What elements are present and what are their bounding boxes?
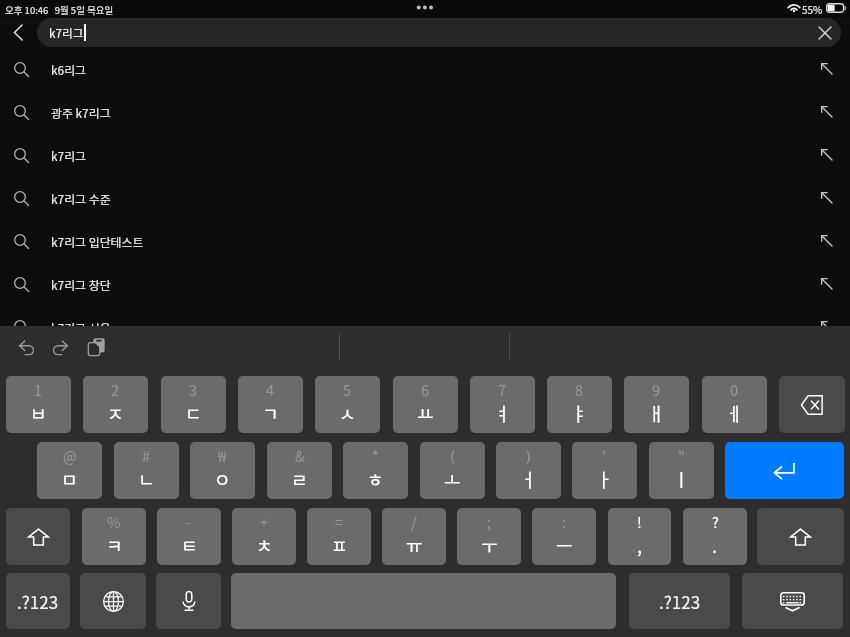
staticText: .	[712, 532, 718, 558]
button[interactable]: Insert "광주 k7리그" into search box	[816, 101, 837, 122]
button[interactable]: .?123	[629, 573, 730, 629]
button[interactable]: Insert "k6리그" into search box	[816, 58, 837, 79]
staticText: ㅅ	[339, 400, 356, 426]
staticText: ㅐ	[648, 400, 665, 426]
button[interactable]: '	[572, 442, 637, 499]
button[interactable]: 4	[238, 376, 303, 433]
button[interactable]: !	[608, 508, 671, 565]
button[interactable]: Insert "k7리그 수준" into search box	[816, 187, 837, 208]
staticText: ㄱ	[262, 400, 279, 426]
staticText: ㅣ	[673, 466, 690, 492]
button[interactable]: k7리그	[37, 18, 841, 47]
staticText: 오후 10:46 9월 5일 목요일	[5, 3, 114, 17]
staticText: ㅔ	[726, 400, 743, 426]
button[interactable]: 2	[83, 376, 148, 433]
button[interactable]: Back	[8, 19, 37, 46]
button[interactable]: "	[649, 442, 714, 499]
button[interactable]: @	[37, 442, 102, 499]
button[interactable]: *	[343, 442, 408, 499]
staticText: 7	[498, 379, 507, 400]
button[interactable]: 광주 k7리그	[0, 91, 850, 134]
button[interactable]: 3	[161, 376, 226, 433]
staticText: 55%	[802, 2, 823, 16]
button[interactable]: )	[496, 442, 561, 499]
button[interactable]: 8	[547, 376, 612, 433]
button[interactable]: Hide keyboard	[742, 573, 843, 629]
button[interactable]: Voice input	[156, 573, 221, 629]
button[interactable]: k7리그 수준	[0, 177, 850, 220]
staticText: k7리그 창단	[51, 276, 111, 293]
staticText: ㅎ	[367, 466, 384, 492]
button[interactable]: Insert "k7리그 창단" into search box	[816, 273, 837, 294]
button[interactable]: Insert "k7리그 선율" into search box	[816, 316, 837, 337]
staticText: .?123	[17, 589, 59, 614]
button[interactable]: k7리그 선율	[0, 306, 850, 349]
staticText: ₩	[218, 445, 227, 466]
button[interactable]: 9	[624, 376, 689, 433]
staticText: ㅗ	[444, 466, 461, 492]
button[interactable]: :	[532, 508, 596, 565]
button[interactable]: Redo	[48, 335, 72, 359]
staticText: 9	[652, 379, 661, 400]
staticText: ㄴ	[138, 466, 155, 492]
button[interactable]: .?123	[6, 573, 70, 629]
button[interactable]: 7	[470, 376, 535, 433]
button[interactable]: Shift	[757, 508, 844, 565]
button[interactable]: Undo	[15, 335, 39, 359]
button[interactable]: Shift	[6, 508, 70, 565]
button[interactable]: k7리그	[0, 134, 850, 177]
staticText: ,	[637, 532, 643, 558]
staticText: ㅠ	[406, 532, 423, 558]
button[interactable]: k7리그 입단테스트	[0, 220, 850, 263]
staticText: 6	[421, 379, 430, 400]
staticText: !	[637, 511, 642, 532]
staticText: ㅋ	[106, 532, 123, 558]
staticText: 1	[34, 379, 43, 400]
staticText: )	[526, 445, 531, 466]
button[interactable]: Insert "k7리그" into search box	[816, 144, 837, 165]
staticText: ㅌ	[181, 532, 198, 558]
staticText: ㅜ	[481, 532, 498, 558]
button[interactable]: =	[307, 508, 371, 565]
staticText: -	[186, 511, 192, 532]
button[interactable]: &	[267, 442, 332, 499]
staticText: %	[107, 511, 121, 532]
button[interactable]: /	[382, 508, 446, 565]
button[interactable]: -	[157, 508, 221, 565]
staticText: :	[562, 511, 567, 532]
staticText: *	[372, 445, 379, 466]
staticText: &	[295, 445, 305, 466]
staticText: ㅈ	[107, 400, 124, 426]
button[interactable]: k7리그 창단	[0, 263, 850, 306]
button[interactable]: ;	[457, 508, 521, 565]
button[interactable]: Enter	[725, 442, 844, 499]
staticText: ㄹ	[291, 466, 308, 492]
button[interactable]: 5	[315, 376, 380, 433]
staticText: 3	[189, 379, 198, 400]
staticText: 광주 k7리그	[51, 104, 111, 121]
button[interactable]: 1	[6, 376, 71, 433]
staticText: ㅏ	[596, 466, 613, 492]
button[interactable]: Backspace	[779, 376, 845, 433]
button[interactable]: %	[82, 508, 146, 565]
button[interactable]: +	[232, 508, 296, 565]
staticText: ;	[487, 511, 492, 532]
staticText: k7리그 선율	[51, 319, 111, 336]
staticText: "	[678, 445, 685, 466]
staticText: ㅂ	[30, 400, 47, 426]
button[interactable]: Clipboard	[84, 335, 108, 359]
button[interactable]: k6리그	[0, 48, 850, 91]
button[interactable]: Change language	[80, 573, 146, 629]
button[interactable]: 0	[702, 376, 767, 433]
button[interactable]: (	[420, 442, 485, 499]
button[interactable]: ?	[683, 508, 747, 565]
staticText: ㅁ	[61, 466, 78, 492]
button[interactable]: 6	[393, 376, 458, 433]
button[interactable]: Clear search	[813, 21, 836, 44]
button[interactable]: Insert "k7리그 입단테스트" into search box	[816, 230, 837, 251]
staticText: @	[63, 445, 77, 466]
staticText: ㅑ	[571, 400, 588, 426]
button[interactable]: ₩	[190, 442, 255, 499]
button[interactable]: #	[114, 442, 179, 499]
